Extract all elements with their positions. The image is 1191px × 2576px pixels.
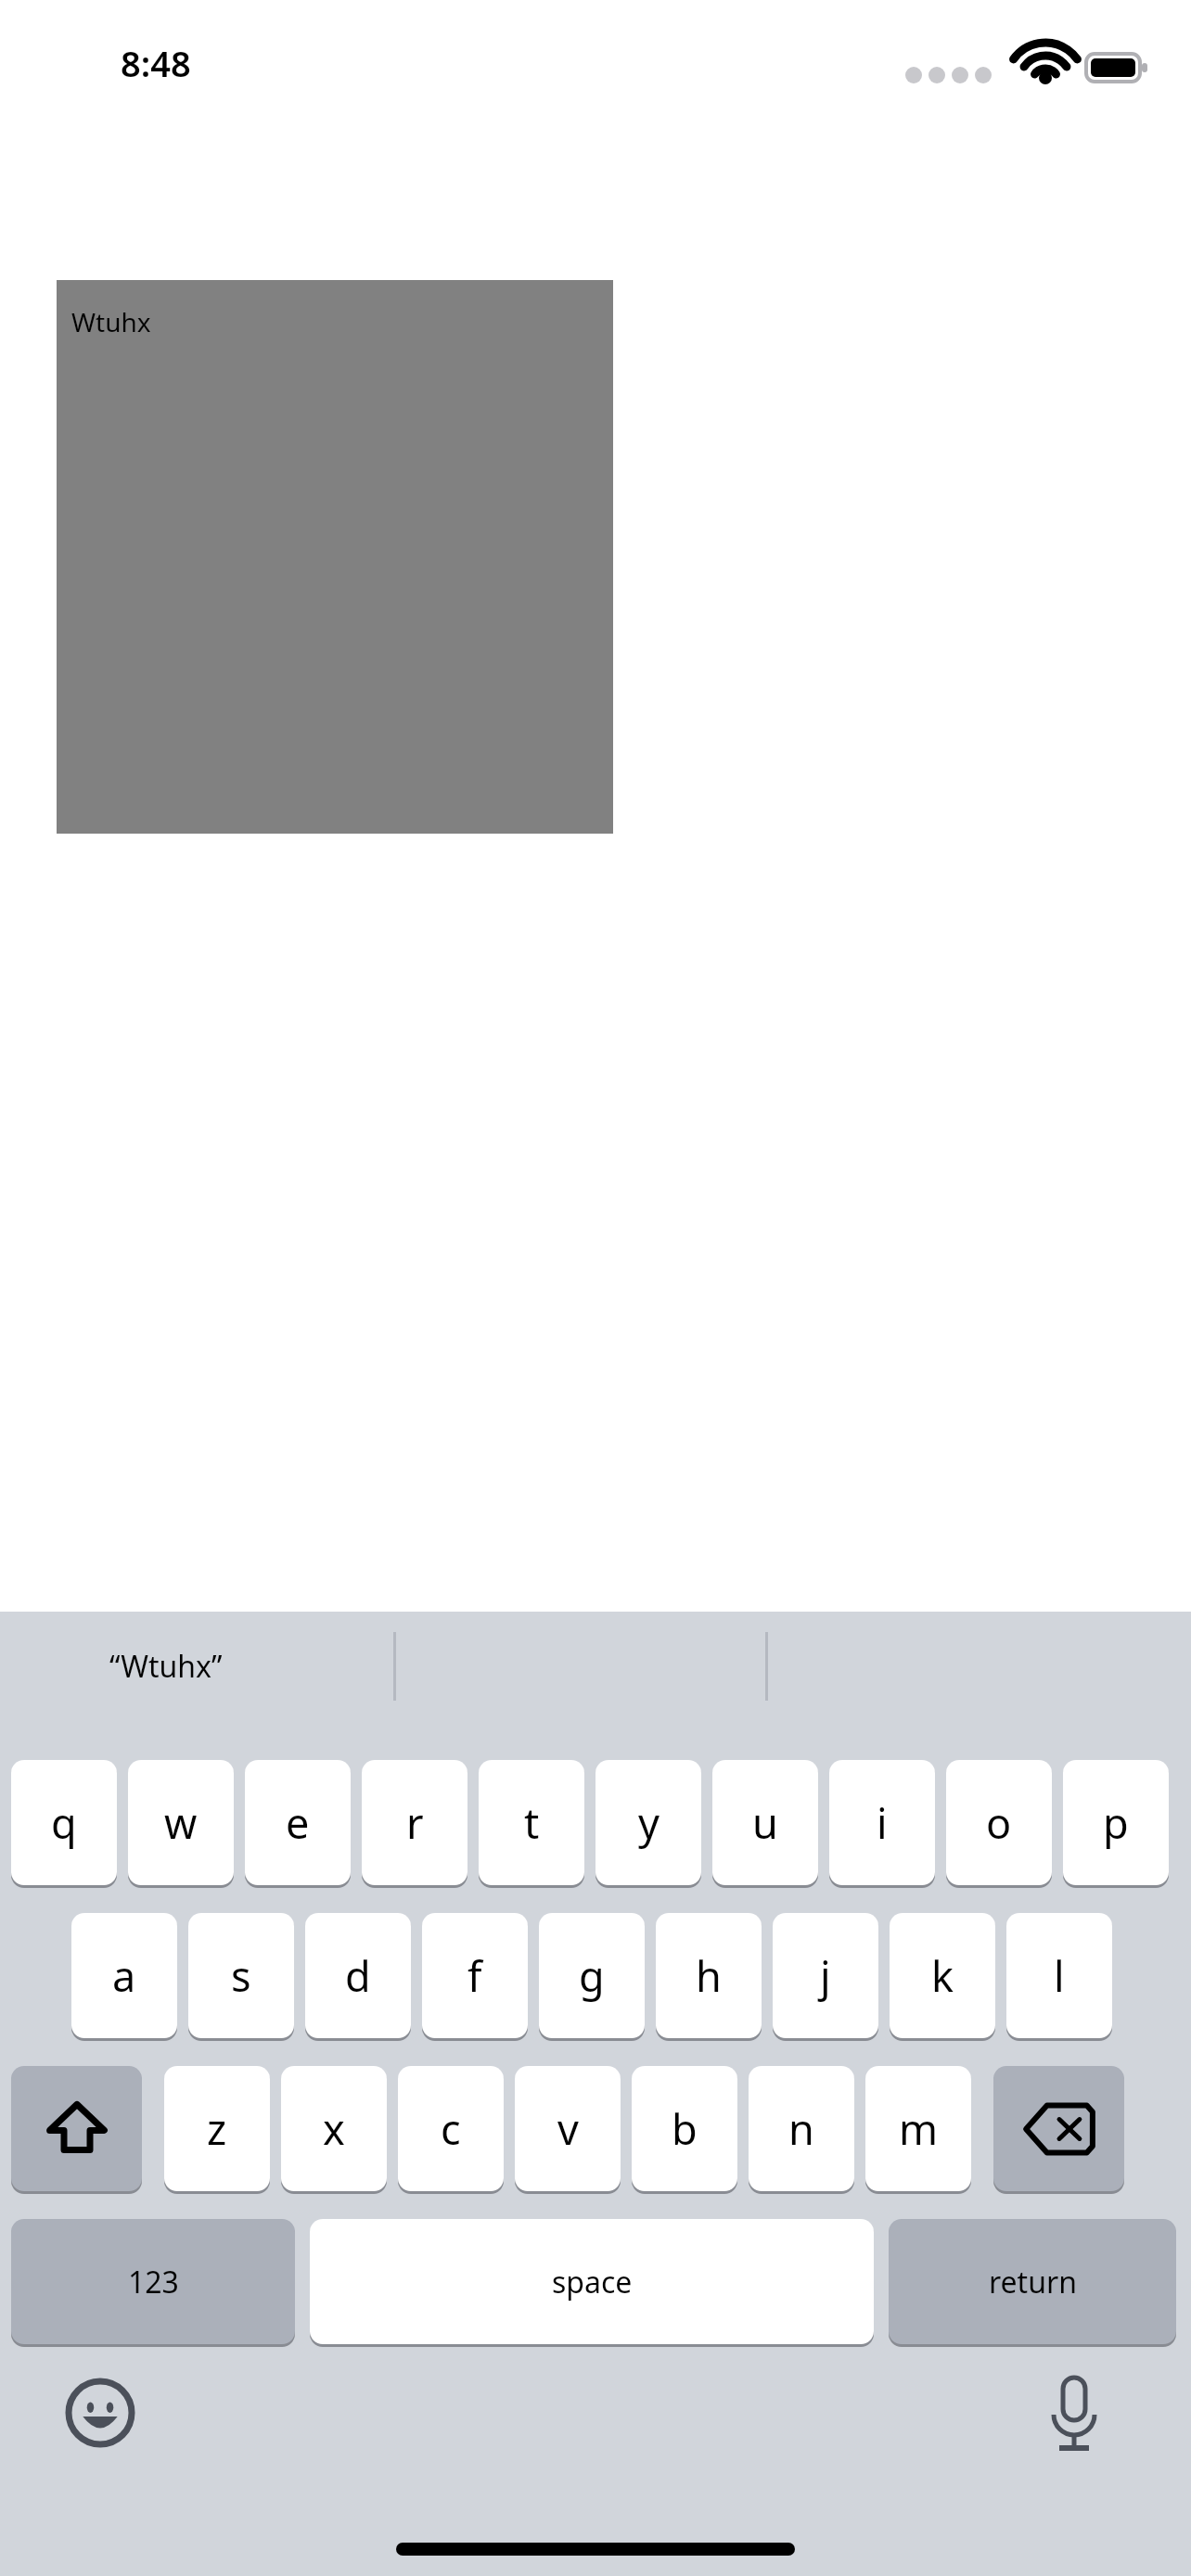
button[interactable]: o [946, 1760, 1052, 1885]
button[interactable]: k [890, 1913, 995, 2038]
staticText: b [672, 2100, 698, 2157]
staticText: k [931, 1947, 954, 2004]
button[interactable]: Shift [11, 2066, 142, 2191]
button[interactable]: c [398, 2066, 504, 2191]
staticText: u [752, 1794, 778, 1851]
staticText: t [524, 1794, 540, 1851]
other: Shift [45, 2097, 109, 2162]
button[interactable]: x [281, 2066, 387, 2191]
staticText: v [557, 2100, 579, 2157]
staticText: o [986, 1794, 1012, 1851]
button[interactable]: p [1063, 1760, 1169, 1885]
button[interactable]: h [656, 1913, 762, 2038]
staticText: r [406, 1794, 424, 1851]
staticText: i [877, 1794, 888, 1851]
button[interactable]: a [71, 1913, 177, 2038]
button[interactable]: e [245, 1760, 351, 1885]
button[interactable]: j [773, 1913, 878, 2038]
staticText: p [1103, 1794, 1129, 1851]
staticText: 8:48 [121, 39, 191, 87]
button[interactable]: z [164, 2066, 270, 2191]
staticText: h [696, 1947, 722, 2004]
button[interactable]: b [632, 2066, 737, 2191]
button[interactable]: r [362, 1760, 467, 1885]
staticText: z [207, 2100, 227, 2157]
button[interactable]: space [310, 2219, 874, 2344]
button[interactable]: v [515, 2066, 621, 2191]
button[interactable]: g [539, 1913, 645, 2038]
staticText: w [164, 1794, 198, 1851]
staticText: n [788, 2100, 814, 2157]
button[interactable]: q [11, 1760, 117, 1885]
button[interactable]: Backspace [993, 2066, 1124, 2191]
button[interactable]: y [595, 1760, 701, 1885]
staticText: space [552, 2262, 633, 2302]
button[interactable]: Wtuhx [57, 280, 613, 834]
staticText: a [112, 1947, 136, 2004]
other: Backspace [1023, 2102, 1095, 2156]
staticText: l [1054, 1947, 1065, 2004]
button[interactable]: d [305, 1913, 411, 2038]
button[interactable]: i [829, 1760, 935, 1885]
staticText: m [899, 2100, 939, 2157]
button[interactable]: n [749, 2066, 854, 2191]
button[interactable]: Emoji keyboard [65, 2378, 135, 2448]
staticText: f [467, 1947, 482, 2004]
staticText: y [638, 1794, 660, 1851]
button[interactable]: l [1006, 1913, 1112, 2038]
button[interactable]: s [188, 1913, 294, 2038]
staticText: e [286, 1794, 310, 1851]
staticText: x [323, 2100, 345, 2157]
button[interactable]: w [128, 1760, 234, 1885]
staticText: return [989, 2262, 1077, 2302]
staticText: 123 [128, 2262, 179, 2302]
button[interactable]: f [422, 1913, 528, 2038]
button[interactable]: m [865, 2066, 971, 2191]
staticText: q [51, 1794, 77, 1851]
button[interactable]: u [712, 1760, 818, 1885]
staticText: Wtuhx [71, 304, 151, 339]
staticText: s [231, 1947, 251, 2004]
staticText: “Wtuhx” [109, 1646, 223, 1687]
staticText: j [820, 1947, 831, 2004]
button[interactable]: t [479, 1760, 584, 1885]
button[interactable]: return [889, 2219, 1176, 2344]
staticText: d [345, 1947, 371, 2004]
button[interactable]: Dictation [1039, 2372, 1109, 2442]
staticText: g [579, 1947, 605, 2004]
staticText: c [441, 2100, 461, 2157]
button[interactable]: 123 [11, 2219, 295, 2344]
